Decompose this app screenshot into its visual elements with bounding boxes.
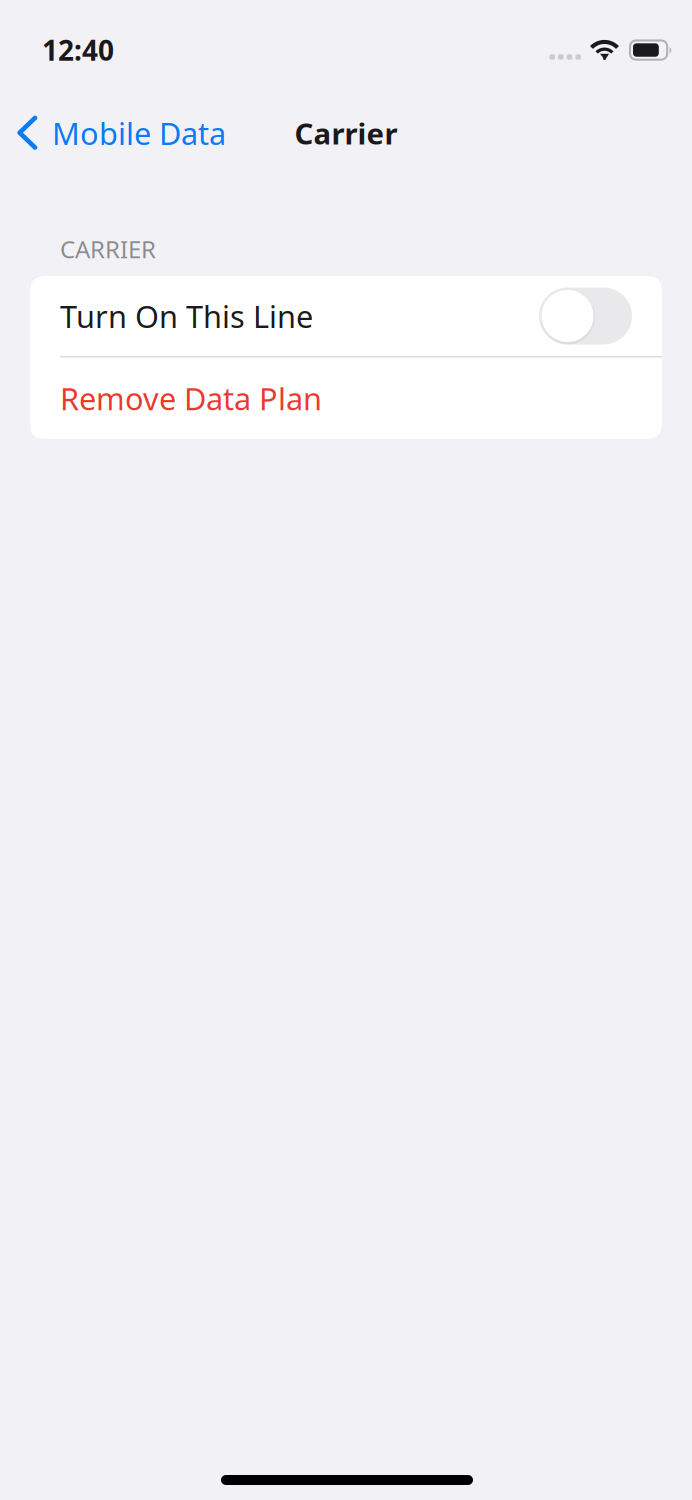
staticText: Carrier	[294, 113, 397, 152]
button[interactable]: Back to Mobile Data	[0, 102, 245, 164]
staticText: 12:40	[42, 31, 114, 69]
staticText: Turn On This Line	[60, 296, 313, 336]
staticText: CARRIER	[60, 233, 156, 265]
staticText: Remove Data Plan	[60, 378, 322, 419]
button[interactable]: Turn On This Line	[30, 276, 662, 356]
button[interactable]: Remove Data Plan	[30, 358, 662, 439]
staticText: Mobile Data	[52, 113, 226, 153]
